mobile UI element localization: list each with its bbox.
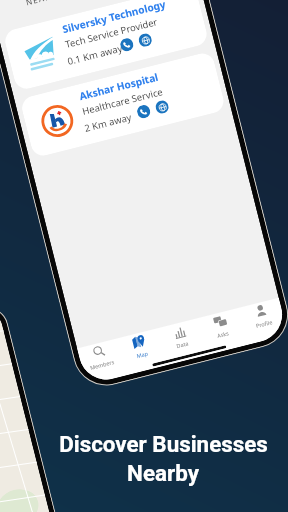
button[interactable]: Map	[117, 329, 163, 363]
button[interactable]: Asks	[197, 308, 244, 342]
staticText: Asks	[216, 329, 230, 339]
staticText: Map	[136, 349, 149, 359]
staticText: Akshar Hospital	[78, 70, 160, 103]
staticText: Discover Businesses	[59, 431, 268, 457]
staticText: Nearby	[127, 460, 199, 486]
staticText: 0.1 Km away	[66, 41, 124, 68]
staticText: Members	[89, 358, 115, 371]
staticText: Healthcare Service	[81, 85, 164, 118]
button[interactable]: Members	[77, 339, 123, 373]
button[interactable]: Silversky Technology	[2, 0, 209, 91]
staticText: Silversky Technology	[61, 0, 167, 36]
staticText: 2 Km away	[83, 110, 134, 135]
button[interactable]: Call	[119, 37, 135, 53]
staticText: Tech Service Provider	[64, 15, 159, 51]
button[interactable]: Akshar Hospital	[19, 51, 226, 158]
button[interactable]: Profile	[238, 298, 285, 332]
button[interactable]: Website	[154, 99, 170, 115]
staticText: NEAR BY	[24, 0, 68, 7]
staticText: Data	[175, 339, 190, 349]
button[interactable]: Call	[136, 104, 152, 119]
staticText: Profile	[255, 318, 273, 329]
button[interactable]: Website	[137, 32, 153, 48]
button[interactable]: Data	[157, 318, 203, 353]
